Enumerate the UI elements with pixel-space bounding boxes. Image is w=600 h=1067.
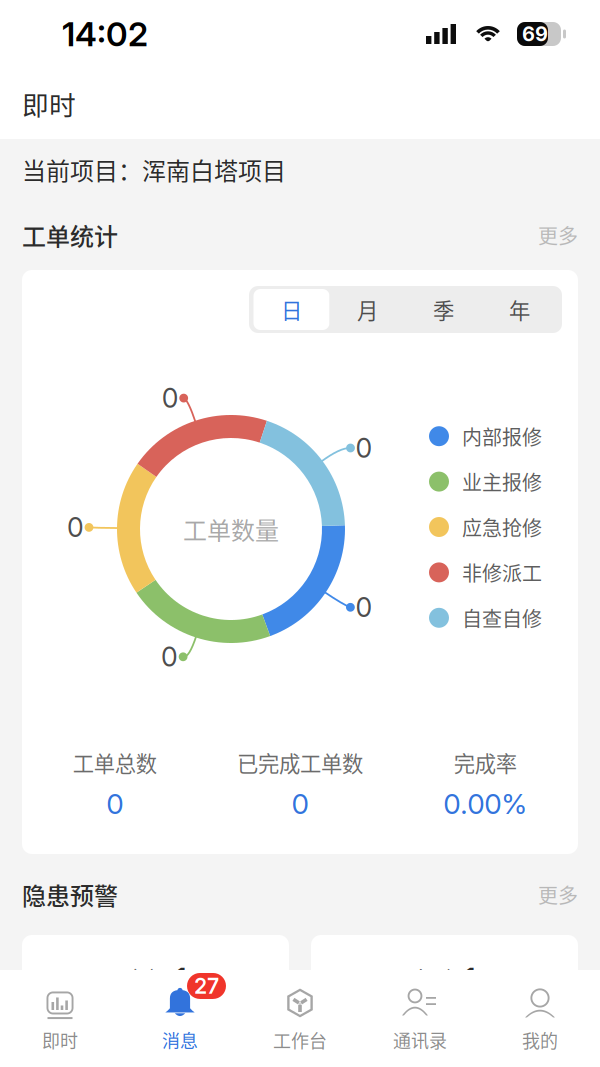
- staticText: 月: [357, 294, 378, 325]
- staticText: 自查自修: [462, 603, 542, 632]
- staticText: 即时: [22, 84, 76, 123]
- staticText: 0: [106, 787, 123, 821]
- staticText: 全部: [124, 963, 166, 994]
- staticText: 工单数量: [183, 512, 279, 546]
- button[interactable]: 通讯录: [360, 970, 480, 1067]
- staticText: 完成率: [454, 747, 517, 778]
- button[interactable]: 季: [405, 289, 481, 330]
- staticText: 年: [509, 294, 530, 325]
- staticText: 隐患预警: [22, 877, 118, 912]
- staticText: 0: [67, 511, 84, 544]
- button[interactable]: 更多: [538, 880, 578, 909]
- staticText: 我的: [522, 1027, 558, 1053]
- staticText: 27: [194, 973, 219, 999]
- button[interactable]: 全部: [22, 935, 289, 1039]
- staticText: 1: [464, 962, 475, 994]
- staticText: 日: [281, 294, 302, 325]
- staticText: 0: [291, 787, 308, 821]
- staticText: 工单总数: [73, 747, 157, 778]
- staticText: 业主报修: [462, 467, 542, 496]
- button[interactable]: 月: [329, 289, 405, 330]
- staticText: 工作台: [273, 1027, 327, 1053]
- button[interactable]: 即时: [0, 970, 120, 1067]
- staticText: 季: [433, 294, 454, 325]
- staticText: 0: [161, 641, 178, 673]
- staticText: 内部报修: [462, 422, 542, 451]
- staticText: 非修派工: [462, 558, 542, 587]
- staticText: 即时: [42, 1027, 78, 1053]
- staticText: 0: [355, 591, 372, 623]
- staticText: 更多: [538, 220, 578, 249]
- staticText: 69: [522, 22, 548, 46]
- staticText: 消息: [162, 1027, 198, 1053]
- staticText: 0.00%: [443, 787, 527, 821]
- staticText: 通讯录: [393, 1027, 447, 1053]
- button[interactable]: 我的: [480, 970, 600, 1067]
- staticText: 1: [175, 962, 186, 994]
- staticText: 当前项目：浑南白塔项目: [22, 152, 286, 187]
- staticText: 0: [355, 432, 372, 464]
- button[interactable]: 更多: [538, 220, 578, 249]
- staticText: 工单统计: [22, 218, 118, 252]
- button[interactable]: 工作台: [240, 970, 360, 1067]
- button[interactable]: 年: [481, 289, 557, 330]
- staticText: 应急抢修: [462, 512, 542, 541]
- button[interactable]: 危险: [311, 935, 578, 1039]
- button[interactable]: 27: [120, 970, 240, 1067]
- staticText: 已完成工单数: [237, 747, 363, 778]
- staticText: 0: [162, 382, 179, 414]
- button[interactable]: 日: [253, 289, 329, 330]
- staticText: 更多: [538, 880, 578, 909]
- staticText: 危险: [413, 963, 455, 994]
- staticText: 14:02: [62, 14, 148, 54]
